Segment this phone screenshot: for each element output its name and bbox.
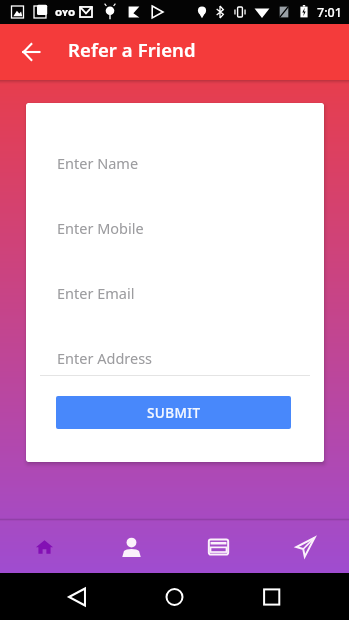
button[interactable]: Profile [88,521,175,573]
staticText: Enter Mobile [57,218,144,238]
button[interactable]: Payments [175,521,262,573]
button[interactable]: Enter Email [57,275,306,310]
staticText: 7:01 [317,4,342,21]
staticText: SUBMIT [147,404,201,422]
staticText: OYO [55,6,76,18]
button[interactable]: Recents [213,573,310,620]
staticText: Enter Address [57,348,153,368]
button[interactable]: Back [0,24,68,80]
staticText: Enter Email [57,283,135,303]
staticText: Enter Name [57,153,139,173]
button[interactable]: Send [262,521,349,573]
staticText: Refer a Friend [68,37,196,62]
button[interactable]: Enter Name [57,145,306,180]
button[interactable]: Enter Address [57,340,306,375]
button[interactable]: Enter Mobile [57,210,306,245]
button[interactable]: SUBMIT [56,396,291,429]
button[interactable]: Home [116,573,213,620]
button[interactable]: Home [0,521,88,573]
button[interactable]: Back [0,573,116,620]
